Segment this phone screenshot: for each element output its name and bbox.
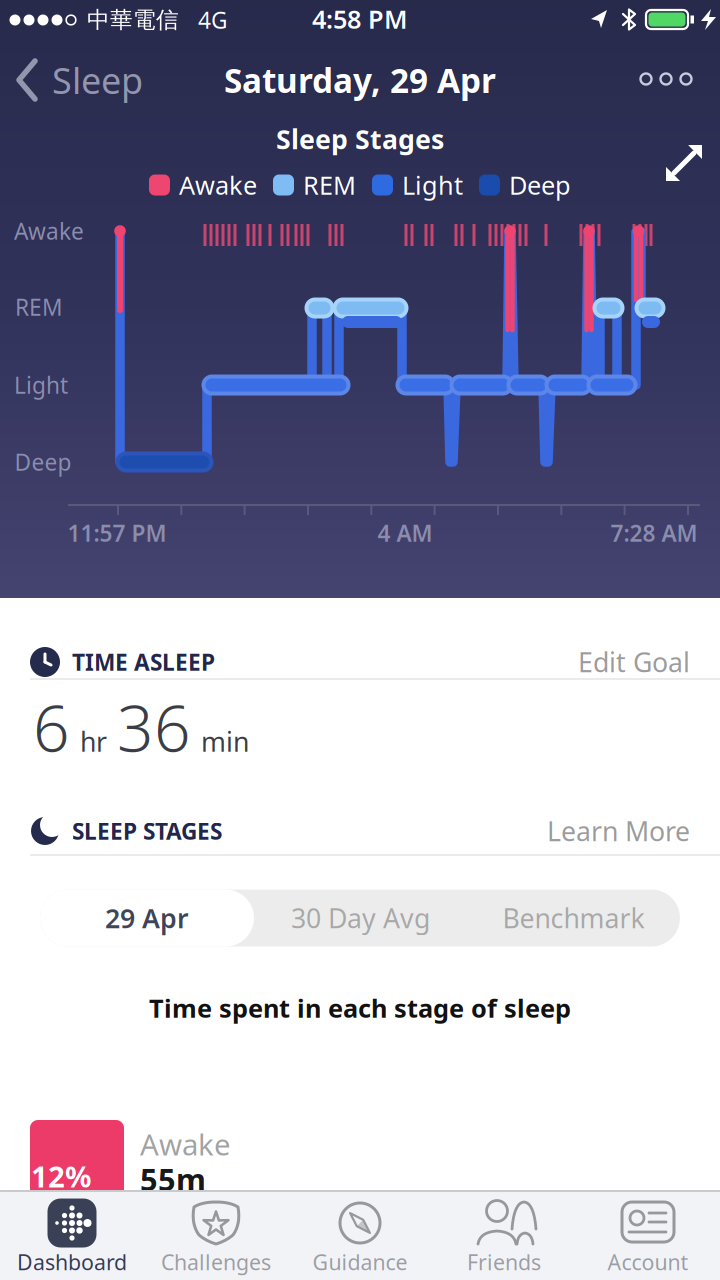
staticText: Sleep Stages [276,121,444,157]
staticText: Sleep [52,56,143,104]
staticText: Deep [509,168,571,202]
staticText: Awake [179,168,257,202]
button[interactable]: Benchmark [467,889,680,946]
staticText: Account [607,1248,688,1276]
staticText: 6 [33,684,70,769]
staticText: 29 Apr [105,900,189,936]
staticText: Light [14,370,68,400]
staticText: 4:58 PM [312,2,408,36]
button[interactable]: Expand chart [664,143,704,183]
button[interactable]: Account [576,1190,720,1280]
staticText: 11:57 PM [67,518,166,548]
button[interactable]: Back [16,56,236,104]
button[interactable]: Dashboard [0,1190,144,1280]
staticText: Guidance [312,1248,407,1276]
staticText: 中華電信 [87,6,179,34]
staticText: Challenges [161,1248,271,1276]
staticText: Time spent in each stage of sleep [149,991,571,1025]
staticText: Awake [140,1124,231,1163]
staticText: Learn More [547,813,690,849]
staticText: 12% [31,1156,91,1195]
staticText: REM [303,168,356,202]
button[interactable]: Learn More [430,813,690,849]
staticText: 7:28 AM [610,518,697,548]
staticText: min [201,724,249,759]
staticText: TIME ASLEEP [72,647,215,677]
button[interactable]: 30 Day Avg [254,889,467,946]
staticText: 55m [140,1159,206,1199]
staticText: REM [15,292,63,322]
staticText: Awake [14,216,84,246]
staticText: Deep [14,447,71,477]
staticText: Edit Goal [578,644,690,680]
button[interactable]: More options [634,67,698,91]
staticText: Saturday, 29 Apr [224,58,496,102]
staticText: hr [80,724,107,759]
button[interactable]: Friends [432,1190,576,1280]
button[interactable]: Guidance [288,1190,432,1280]
staticText: 36 [117,684,191,769]
staticText: Benchmark [502,900,644,936]
staticText: Light [402,168,463,202]
staticText: Dashboard [17,1248,127,1276]
staticText: SLEEP STAGES [72,816,222,846]
staticText: 4 AM [377,518,432,548]
staticText: Friends [467,1248,541,1276]
staticText: 30 Day Avg [291,900,430,936]
button[interactable]: Edit Goal [430,644,690,680]
staticText: 4G [198,5,228,35]
button[interactable]: 29 Apr [40,889,254,946]
button[interactable]: Challenges [144,1190,288,1280]
